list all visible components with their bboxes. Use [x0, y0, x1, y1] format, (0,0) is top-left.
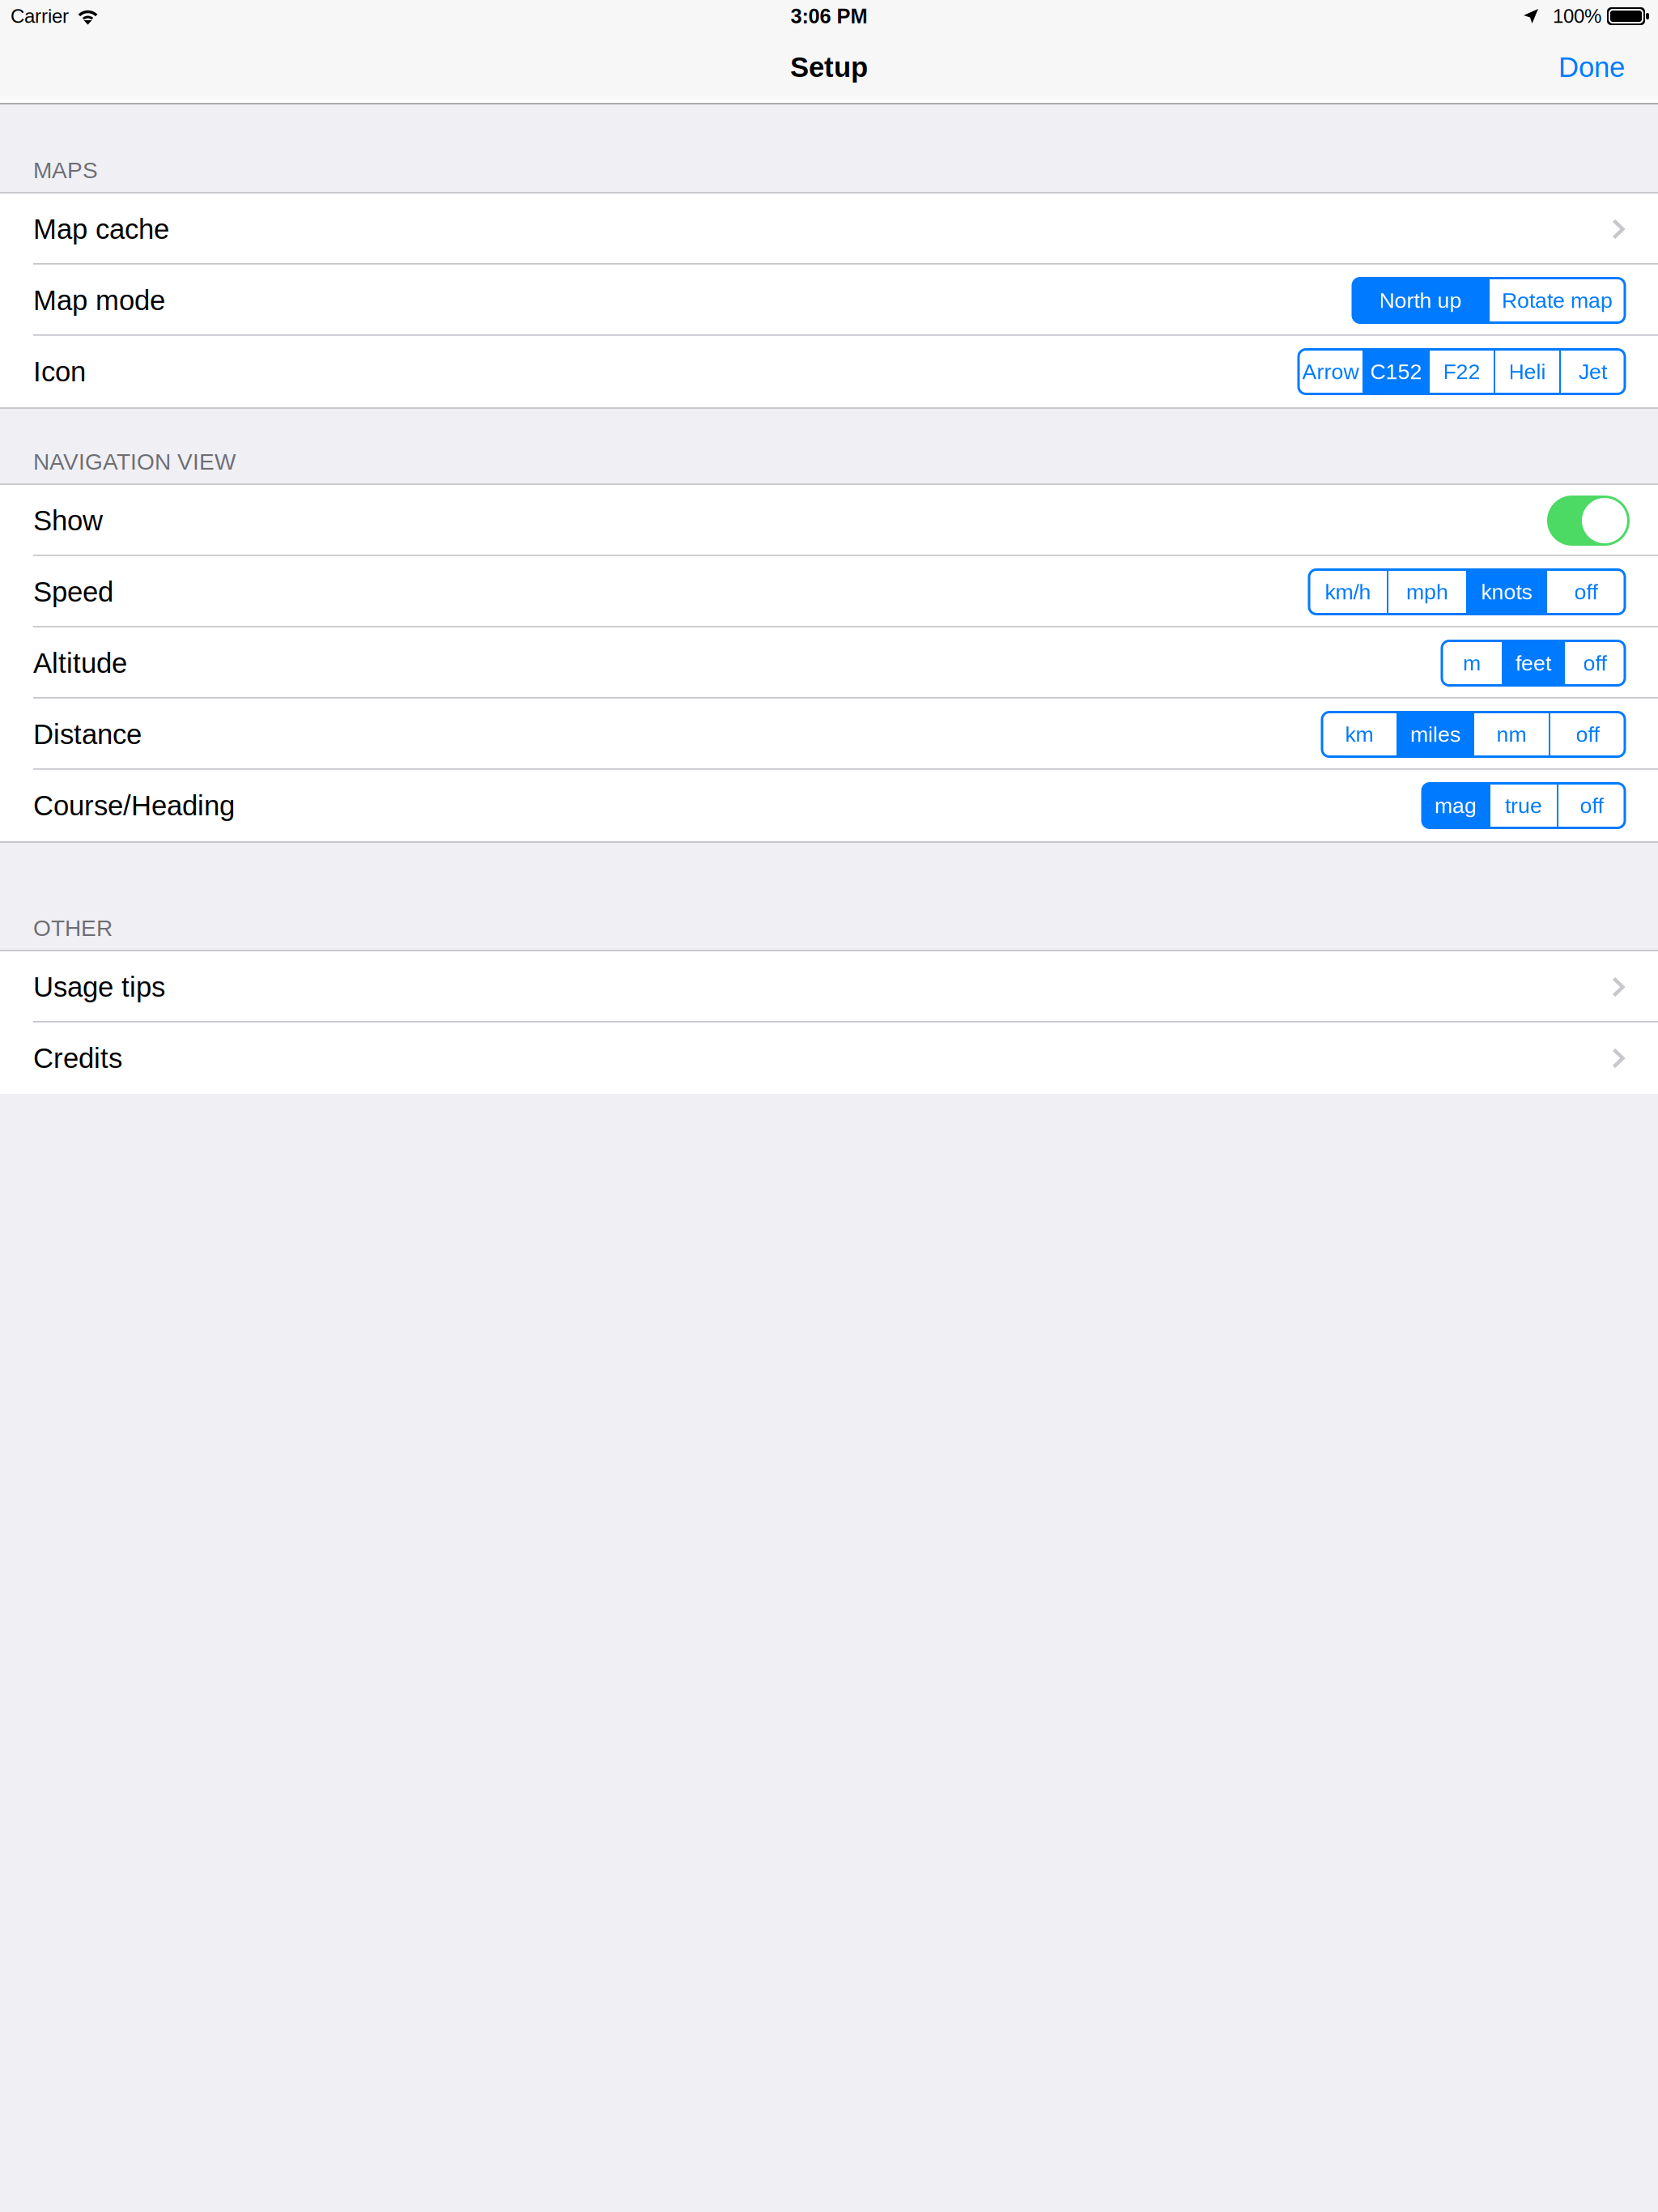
button[interactable]: Map mode: [0, 265, 1658, 336]
staticText: Rotate map: [1502, 288, 1613, 312]
staticText: 100%: [1553, 5, 1601, 27]
button[interactable]: Map cache: [0, 194, 1658, 265]
staticText: off: [1583, 651, 1607, 675]
staticText: F22: [1443, 360, 1480, 384]
button[interactable]: Show: [0, 485, 1658, 556]
staticText: off: [1576, 722, 1599, 746]
staticText: nm: [1496, 722, 1526, 746]
button[interactable]: off: [1550, 712, 1625, 757]
button[interactable]: Altitude: [0, 627, 1658, 699]
staticText: km: [1345, 722, 1373, 746]
button[interactable]: km: [1322, 712, 1397, 757]
button[interactable]: Speed: [0, 556, 1658, 627]
button[interactable]: miles: [1398, 712, 1473, 757]
button[interactable]: m: [1442, 641, 1502, 685]
staticText: Speed: [33, 576, 113, 607]
button[interactable]: mag: [1422, 783, 1489, 828]
staticText: Setup: [790, 51, 868, 83]
button[interactable]: Done: [1534, 40, 1658, 94]
staticText: Distance: [33, 719, 142, 750]
button[interactable]: Jet: [1561, 349, 1625, 394]
button[interactable]: mph: [1388, 570, 1466, 614]
button[interactable]: Course/Heading: [0, 770, 1658, 841]
button[interactable]: knots: [1468, 570, 1545, 614]
staticText: Map mode: [33, 285, 165, 316]
button[interactable]: Rotate map: [1490, 278, 1625, 323]
staticText: off: [1574, 580, 1598, 604]
staticText: km/h: [1325, 580, 1371, 604]
staticText: North up: [1379, 288, 1462, 312]
button[interactable]: off: [1565, 641, 1625, 685]
staticText: mag: [1435, 794, 1477, 818]
staticText: knots: [1481, 580, 1532, 604]
staticText: Course/Heading: [33, 790, 235, 821]
staticText: Carrier: [11, 5, 69, 27]
staticText: true: [1505, 794, 1542, 818]
staticText: mph: [1406, 580, 1448, 604]
staticText: Credits: [33, 1043, 122, 1074]
button[interactable]: F22: [1430, 349, 1494, 394]
staticText: Arrow: [1302, 360, 1359, 384]
staticText: off: [1580, 794, 1603, 818]
staticText: Usage tips: [33, 971, 165, 1003]
button[interactable]: feet: [1503, 641, 1563, 685]
button[interactable]: true: [1490, 783, 1557, 828]
staticText: Heli: [1509, 360, 1546, 384]
button[interactable]: Usage tips: [0, 951, 1658, 1023]
button[interactable]: off: [1558, 783, 1625, 828]
button[interactable]: Arrow: [1299, 349, 1363, 394]
staticText: Map cache: [33, 213, 169, 245]
staticText: Jet: [1579, 360, 1607, 384]
button[interactable]: off: [1547, 570, 1625, 614]
button[interactable]: Credits: [0, 1023, 1658, 1094]
button[interactable]: C152: [1364, 349, 1428, 394]
staticText: feet: [1516, 651, 1551, 675]
button[interactable]: North up: [1353, 278, 1488, 323]
button[interactable]: km/h: [1309, 570, 1387, 614]
staticText: Show: [33, 505, 103, 536]
staticText: miles: [1410, 722, 1460, 746]
staticText: Done: [1558, 51, 1625, 83]
staticText: Icon: [33, 356, 86, 387]
staticText: OTHER: [33, 915, 113, 941]
staticText: C152: [1370, 360, 1422, 384]
button[interactable]: Distance: [0, 699, 1658, 770]
button[interactable]: nm: [1474, 712, 1549, 757]
staticText: 3:06 PM: [791, 5, 867, 28]
button[interactable]: Icon: [0, 336, 1658, 407]
staticText: MAPS: [33, 158, 98, 183]
staticText: m: [1463, 651, 1481, 675]
staticText: NAVIGATION VIEW: [33, 449, 236, 474]
staticText: Altitude: [33, 647, 127, 679]
button[interactable]: Heli: [1495, 349, 1559, 394]
